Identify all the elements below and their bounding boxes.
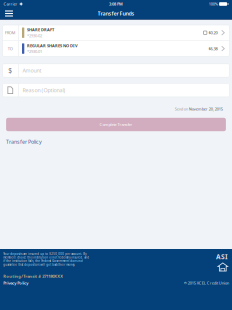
staticText: Send on: [175, 106, 189, 112]
staticText: 100%: [209, 1, 218, 7]
button[interactable]: FROM: [3, 25, 229, 40]
staticText: Amount: [22, 67, 41, 74]
staticText: *2930-01: [27, 49, 42, 54]
staticText: TO: [8, 46, 13, 51]
staticText: Your deposits are insured up to $250,000…: [3, 252, 89, 266]
staticText: Reason (Optional): [22, 87, 65, 94]
staticText: *2930-02: [27, 33, 42, 38]
staticText: Routing/Transit # 271180XXX: [3, 274, 63, 279]
staticText: ASI: [216, 252, 228, 261]
button[interactable]: Transfer Policy: [6, 138, 42, 145]
button[interactable]: TO: [3, 41, 229, 56]
staticText: $0.20: [208, 30, 217, 35]
staticText: $6.38: [208, 46, 217, 51]
staticText: REGULAR SHARES NO DIV: [27, 43, 78, 48]
staticText: Privacy Policy: [3, 280, 28, 286]
button[interactable]: Menu: [0, 8, 18, 19]
button[interactable]: Privacy Policy: [3, 280, 28, 286]
staticText: © 2015 XCEL Credit Union: [184, 280, 229, 286]
staticText: Transfer Policy: [6, 138, 42, 145]
staticText: SHARE DRAFT: [27, 27, 54, 32]
staticText: November 20, 2015: [189, 106, 223, 112]
button[interactable]: Complete Transfer: [6, 118, 226, 131]
staticText: Carrier: [3, 1, 17, 7]
staticText: 3:08 PM: [109, 1, 123, 7]
staticText: $: [8, 66, 12, 75]
staticText: Transfer Funds: [97, 10, 134, 17]
staticText: Complete Transfer: [99, 122, 132, 127]
staticText: FROM: [5, 30, 16, 35]
